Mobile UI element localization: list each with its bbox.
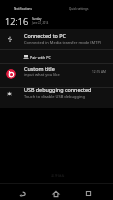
staticText: Custom title <box>24 65 55 72</box>
staticText: 蓝牙键盘 <box>51 174 65 178</box>
staticText: Notifications <box>14 7 32 11</box>
staticText: June 22, 2014 <box>32 21 49 25</box>
button[interactable]: Home <box>45 183 67 200</box>
staticText: Connected in Media transfer mode (MTP) <box>24 40 102 45</box>
staticText: 12:15 AM <box>92 70 106 74</box>
button[interactable] <box>0 63 113 86</box>
button[interactable]: Pair with PC <box>0 50 113 64</box>
button[interactable]: Back <box>11 183 33 200</box>
button[interactable]: Recents <box>77 183 99 200</box>
staticText: USB debugging connected <box>24 86 92 93</box>
staticText: Connected to PC <box>24 32 66 39</box>
button[interactable] <box>0 87 113 109</box>
button[interactable]: Quick settings <box>69 7 89 11</box>
staticText: 12:16 <box>5 15 29 28</box>
staticText: Sunday <box>32 17 42 21</box>
staticText: Touch to disable USB debugging <box>24 94 85 99</box>
staticText: input what you like <box>24 72 60 77</box>
staticText: Pair with PC <box>30 55 51 60</box>
button[interactable] <box>0 29 113 49</box>
